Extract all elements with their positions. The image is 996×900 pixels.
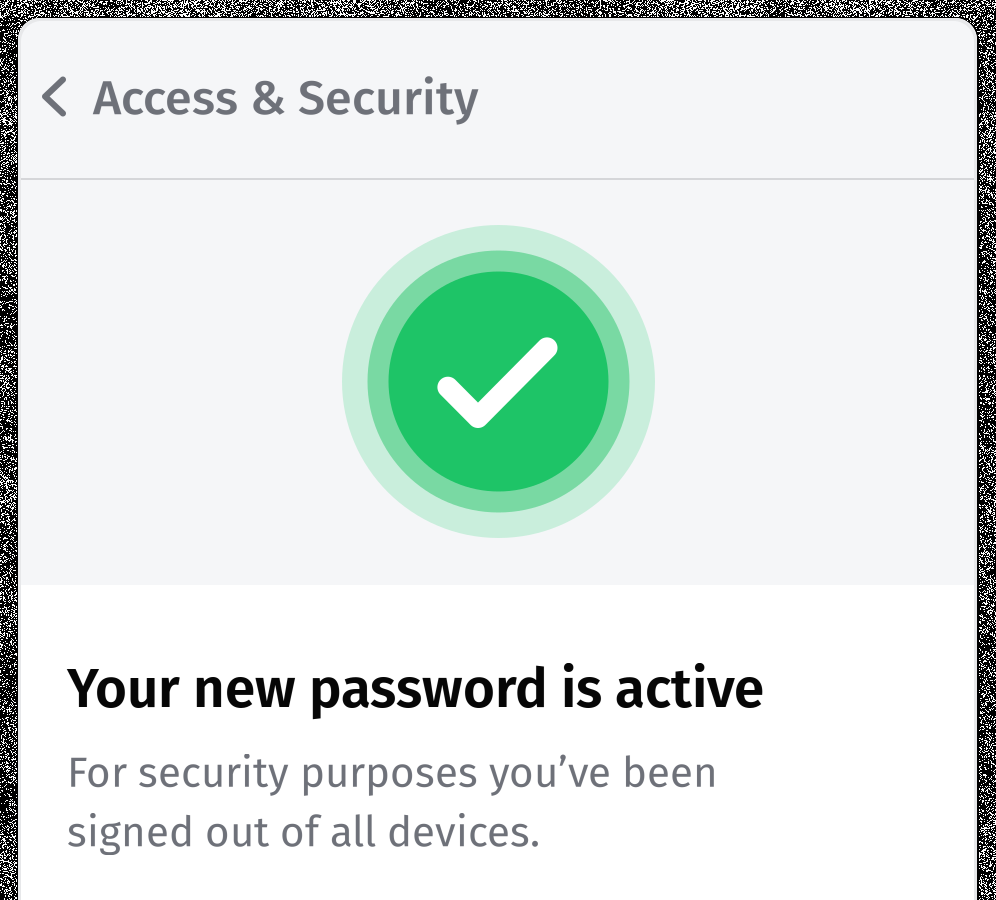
staticText: For security purposes you’ve been [67, 748, 718, 798]
staticText: Your new password is active [67, 656, 764, 722]
staticText: signed out of all devices. [67, 807, 540, 857]
button[interactable]: Back to Access & Security [18, 18, 494, 178]
staticText: Access & Security [93, 69, 478, 127]
